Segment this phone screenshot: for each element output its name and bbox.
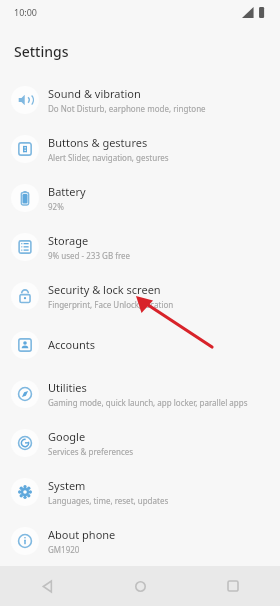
staticText: Do Not Disturb, earphone mode, ringtone (48, 103, 206, 114)
button[interactable]: Storage (0, 222, 280, 271)
staticText: Sound & vibration (48, 86, 141, 101)
button[interactable]: Recents (213, 566, 253, 606)
button[interactable]: Back (27, 566, 67, 606)
staticText: About phone (48, 527, 116, 542)
button[interactable]: System (0, 467, 280, 516)
button[interactable]: Buttons & gestures (0, 124, 280, 173)
button[interactable]: Battery (0, 173, 280, 222)
staticText: Battery (48, 184, 86, 199)
button[interactable]: Utilities (0, 369, 280, 418)
staticText: GM1920 (48, 544, 80, 555)
staticText: Utilities (48, 380, 87, 395)
button[interactable]: Google (0, 418, 280, 467)
button[interactable]: Accounts (0, 320, 280, 369)
staticText: Services & preferences (48, 446, 134, 457)
staticText: 10:00 (14, 6, 38, 18)
staticText: Fingerprint, Face Unlock, location (48, 299, 174, 310)
staticText: 9% used - 233 GB free (48, 250, 131, 261)
button[interactable]: Security & lock screen (0, 271, 280, 320)
button[interactable]: Sound & vibration (0, 75, 280, 124)
staticText: Settings (14, 42, 69, 61)
staticText: Storage (48, 233, 89, 248)
staticText: Google (48, 429, 86, 444)
staticText: 92% (48, 201, 64, 212)
staticText: Gaming mode, quick launch, app locker, p… (48, 397, 248, 408)
button[interactable]: About phone (0, 516, 280, 565)
staticText: Accounts (48, 337, 96, 352)
staticText: Languages, time, reset, updates (48, 495, 169, 506)
staticText: Buttons & gestures (48, 135, 148, 150)
button[interactable]: Home (120, 566, 160, 606)
staticText: Alert Slider, navigation, gestures (48, 152, 169, 163)
staticText: System (48, 478, 86, 493)
staticText: Security & lock screen (48, 282, 161, 297)
